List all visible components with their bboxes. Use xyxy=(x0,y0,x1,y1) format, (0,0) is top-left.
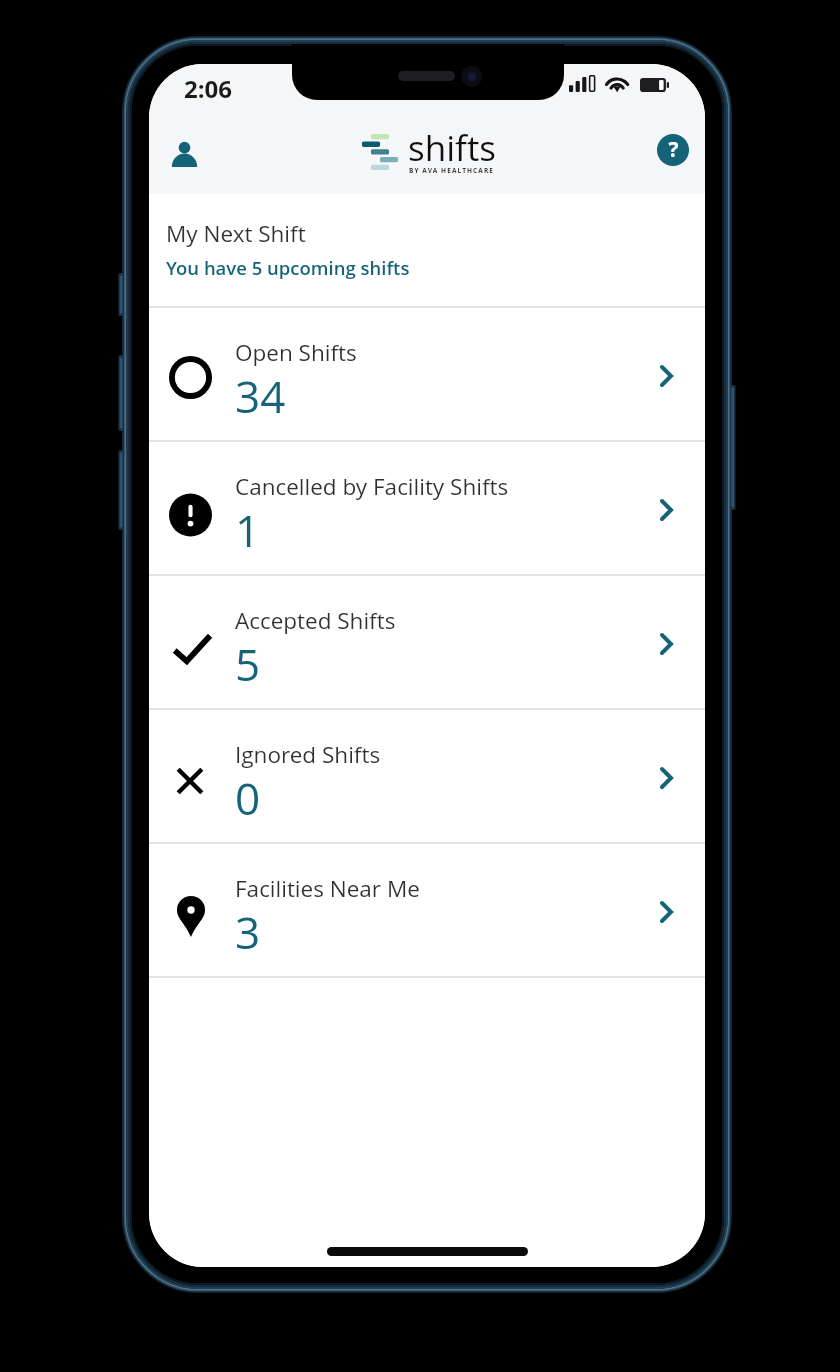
button[interactable]: Ignored Shifts xyxy=(149,710,705,842)
staticText: 2:06 xyxy=(184,72,232,105)
staticText: ? xyxy=(668,135,679,164)
staticText: Open Shifts xyxy=(235,337,357,368)
button[interactable]: Cancelled by Facility Shifts xyxy=(149,442,705,574)
staticText: Accepted Shifts xyxy=(235,605,396,636)
staticText: Ignored Shifts xyxy=(235,739,381,770)
staticText: My Next Shift xyxy=(166,218,306,249)
button[interactable]: Accepted Shifts xyxy=(149,576,705,708)
staticText: 3 xyxy=(235,902,261,962)
button[interactable]: Open Shifts xyxy=(149,308,705,440)
staticText: 5 xyxy=(235,634,261,694)
button[interactable]: Profile xyxy=(149,110,217,194)
button[interactable]: Help xyxy=(637,110,705,194)
staticText: You have 5 upcoming shifts xyxy=(166,255,410,280)
staticText: shifts xyxy=(408,124,496,172)
button[interactable]: Facilities Near Me xyxy=(149,844,705,976)
staticText: 0 xyxy=(235,768,261,828)
staticText: 1 xyxy=(235,500,261,560)
staticText: Facilities Near Me xyxy=(235,873,420,904)
staticText: BY AVA HEALTHCARE xyxy=(409,166,495,175)
staticText: 34 xyxy=(235,366,286,426)
staticText: Cancelled by Facility Shifts xyxy=(235,471,509,502)
